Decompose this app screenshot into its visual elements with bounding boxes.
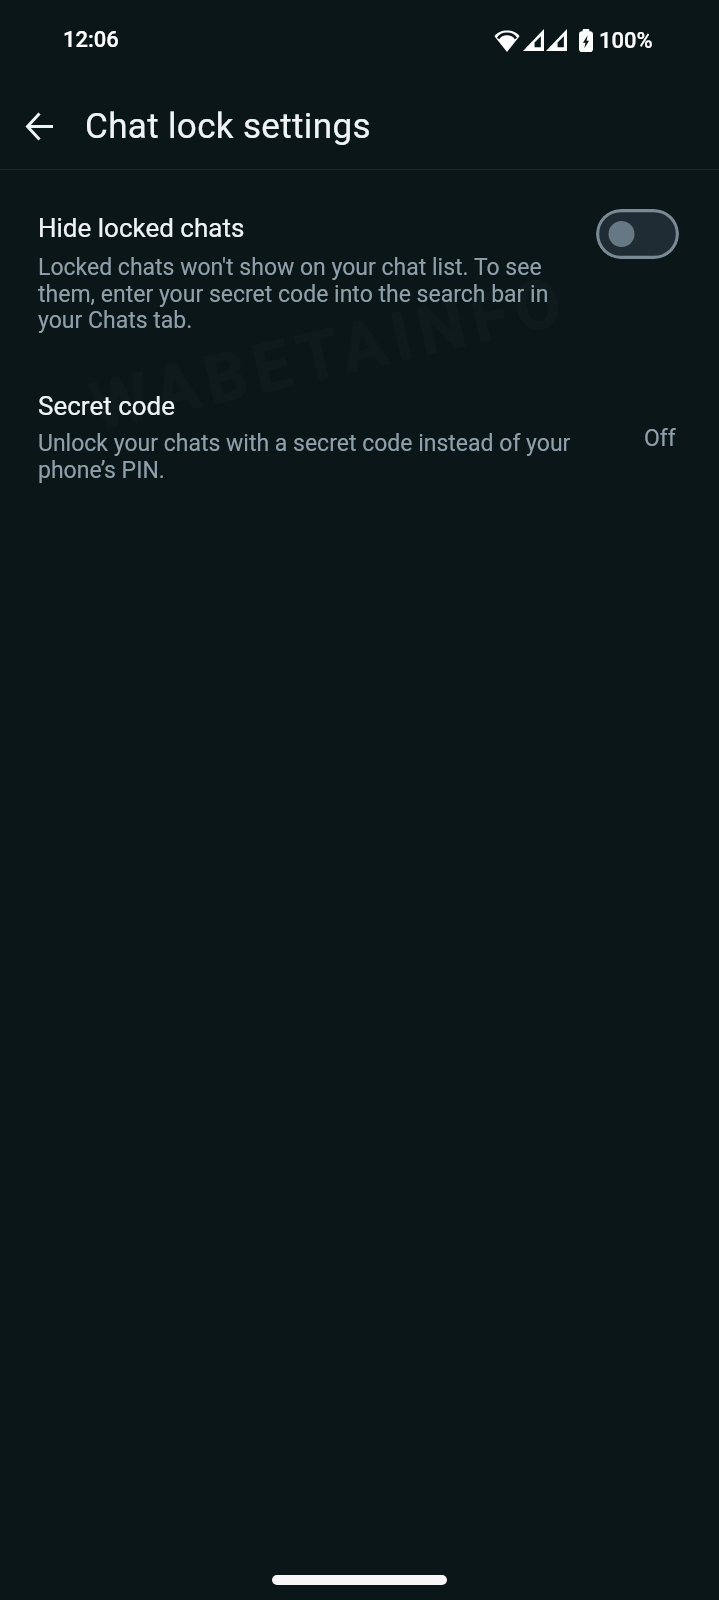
button[interactable]: Hide locked chats [596, 209, 679, 259]
staticText: Chat lock settings [85, 106, 371, 147]
staticText: Unlock your chats with a secret code ins… [38, 430, 583, 484]
staticText: Hide locked chats [38, 213, 245, 243]
button[interactable]: Hide locked chats [0, 186, 719, 336]
staticText: 100% [599, 28, 653, 54]
staticText: Locked chats won't show on your chat lis… [38, 254, 583, 334]
button[interactable]: Secret code [0, 365, 719, 493]
staticText: Off [644, 425, 676, 452]
staticText: 12:06 [63, 27, 119, 53]
staticText: Secret code [38, 391, 176, 421]
button[interactable]: Back [12, 99, 66, 153]
staticText: WABETAINFO [83, 261, 576, 446]
